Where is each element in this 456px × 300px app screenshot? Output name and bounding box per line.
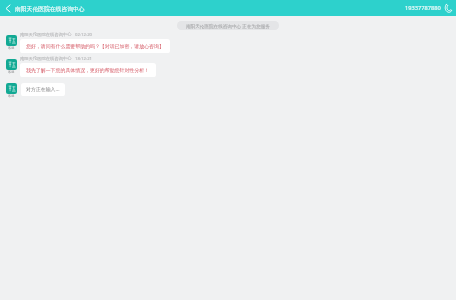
button[interactable]: 我先了解一下您的具体情况，更好的帮助您针对性分析！ [20,63,156,77]
staticText: 19337787880 [405,4,441,12]
button[interactable]: Avatar [6,83,17,94]
staticText: 对方正在输入... [26,86,60,93]
button[interactable]: Back [0,0,15,16]
staticText: 18:12:21 [75,55,93,61]
staticText: 客服 [8,94,15,98]
staticText: 我先了解一下您的具体情况，更好的帮助您针对性分析！ [26,67,150,73]
staticText: 您好，请问有什么需要帮助的吗？【对话已加密，请放心咨询】 [26,43,164,49]
button[interactable]: Avatar [6,59,17,70]
button[interactable]: Avatar [6,35,17,46]
staticText: 客服 [8,46,15,50]
button[interactable]: 您好，请问有什么需要帮助的吗？【对话已加密，请放心咨询】 [20,39,170,53]
button[interactable]: Call [405,0,456,16]
staticText: 南阳天伦医院在线咨询中心 [20,56,72,61]
staticText: 02:12:20 [75,31,93,37]
staticText: 南阳天伦医院在线咨询中心 [20,32,72,37]
staticText: 南阳天伦医院在线咨询中心 正在为您服务 [186,23,270,29]
staticText: 南阳天伦医院在线咨询中心 [15,5,85,12]
staticText: 客服 [8,70,15,74]
button[interactable]: 对方正在输入... [21,83,65,96]
